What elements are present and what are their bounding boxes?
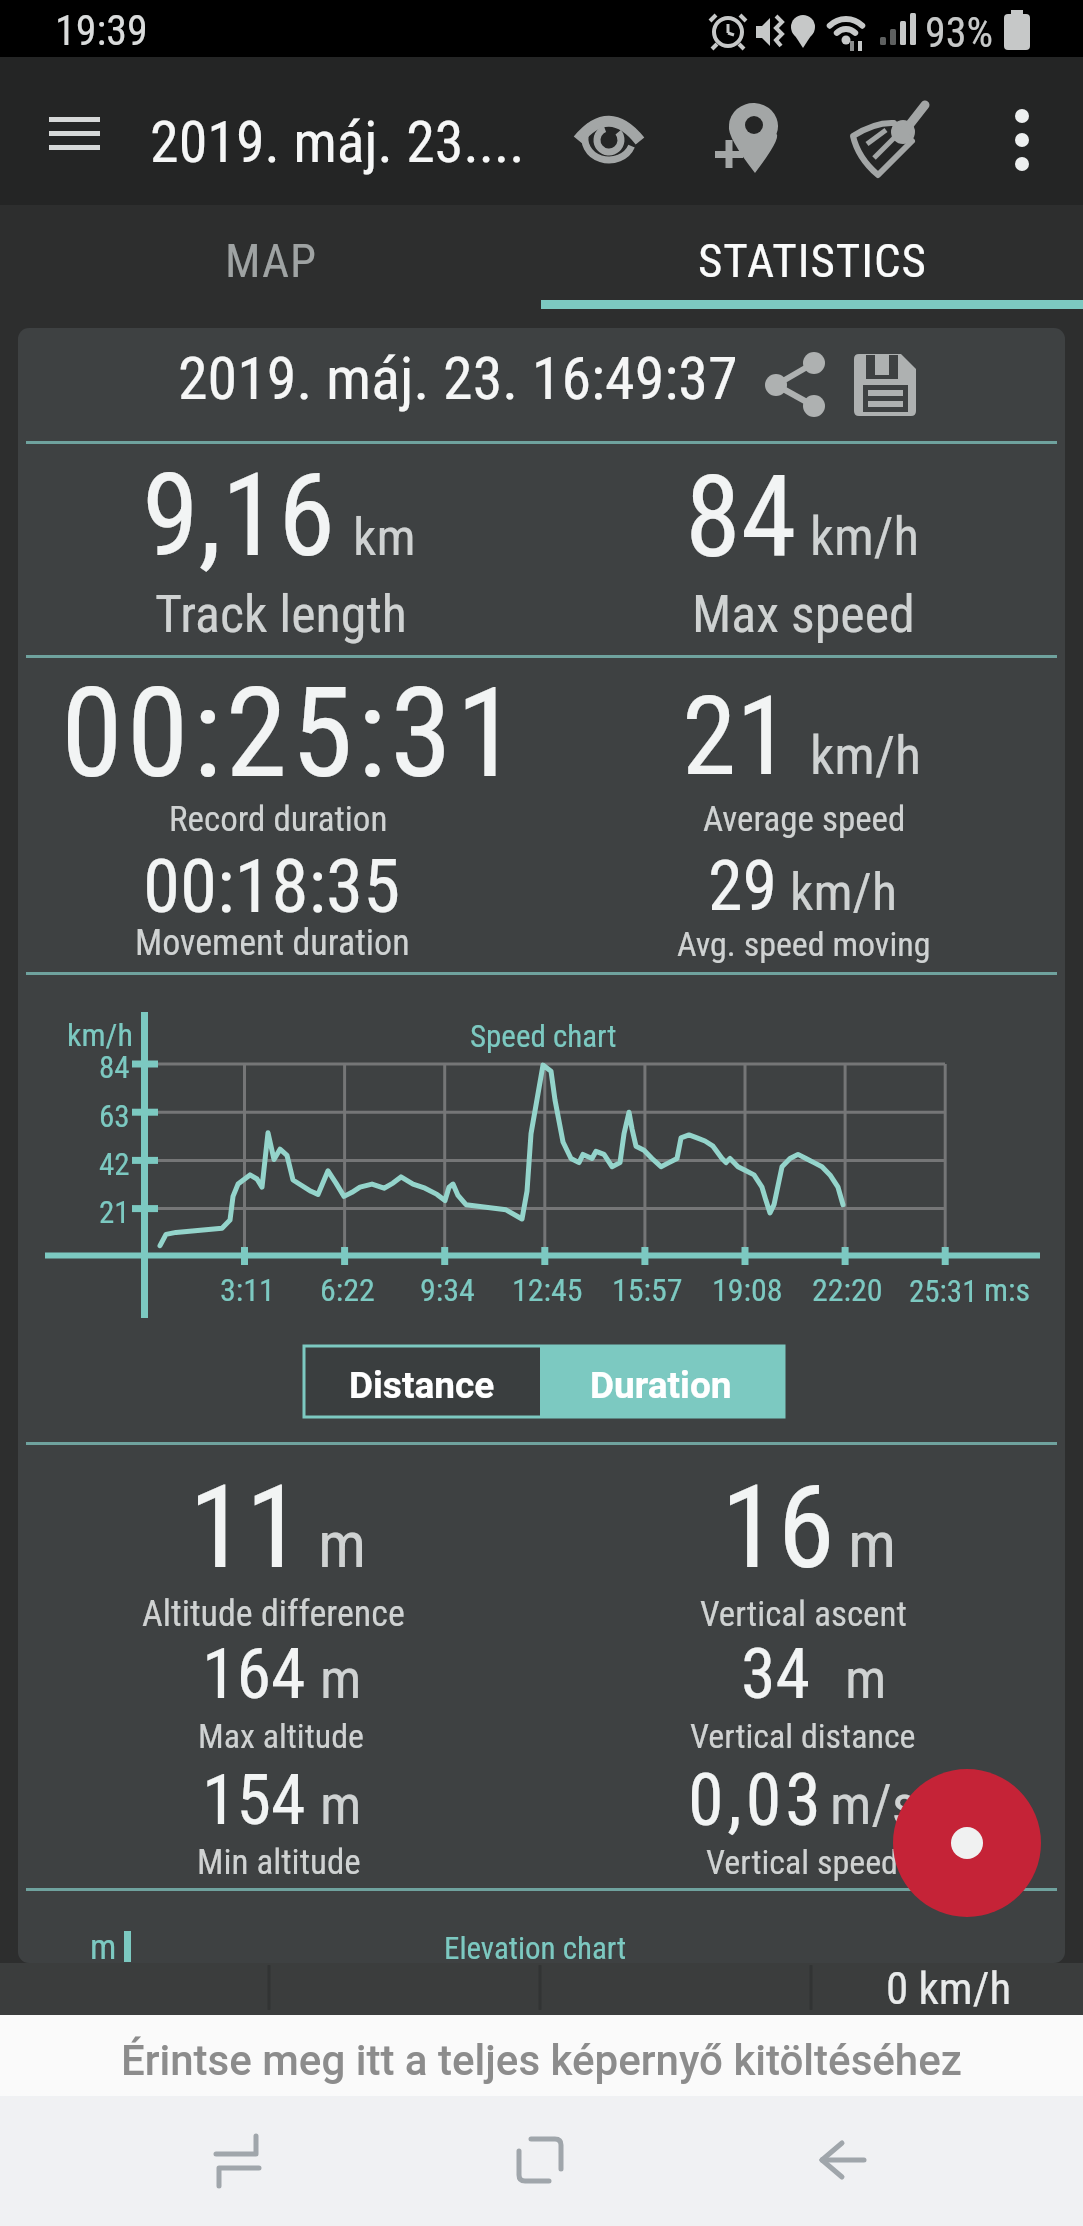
staticText: 34 xyxy=(741,1633,811,1715)
staticText: 9:34 xyxy=(420,1271,475,1309)
staticText: Vertical ascent xyxy=(700,1594,907,1635)
button[interactable] xyxy=(985,95,1065,185)
staticText: m xyxy=(90,1927,117,1968)
staticText: m xyxy=(320,1647,362,1711)
button[interactable] xyxy=(170,2106,310,2216)
staticText: Distance xyxy=(349,1364,495,1407)
staticText: m:s xyxy=(984,1271,1031,1309)
button[interactable] xyxy=(845,95,945,185)
staticText: 63 xyxy=(99,1098,130,1134)
button[interactable] xyxy=(840,340,935,435)
staticText: m xyxy=(318,1508,367,1583)
button[interactable] xyxy=(541,205,1083,310)
staticText: Elevation chart xyxy=(444,1930,627,1966)
button[interactable] xyxy=(565,100,655,180)
button[interactable] xyxy=(0,205,541,310)
staticText: 84 xyxy=(99,1049,130,1085)
staticText: m xyxy=(848,1508,897,1583)
staticText: 21 xyxy=(682,672,791,801)
staticText: Max speed xyxy=(692,584,915,645)
staticText: 00:25:31 xyxy=(61,660,522,806)
staticText: km/h xyxy=(790,862,897,923)
staticText: 2019. máj. 23. 16:49:37 xyxy=(178,343,738,413)
staticText: km/h xyxy=(810,724,922,787)
staticText: 0 km/h xyxy=(886,1962,1012,2015)
button[interactable] xyxy=(470,2106,610,2216)
staticText: 16 xyxy=(721,1460,835,1595)
staticText: m xyxy=(320,1773,362,1837)
staticText: 3:11 xyxy=(220,1271,275,1309)
staticText: 9,16 xyxy=(142,448,335,583)
staticText: Avg. speed moving xyxy=(677,924,931,964)
button[interactable] xyxy=(700,95,800,185)
staticText: Track length xyxy=(155,584,407,645)
staticText: 19:08 xyxy=(712,1271,783,1309)
staticText: 154 xyxy=(202,1759,306,1841)
staticText: MAP xyxy=(225,233,318,288)
staticText: 19:39 xyxy=(55,6,148,55)
staticText: Max altitude xyxy=(198,1716,364,1756)
staticText: 22:20 xyxy=(812,1271,883,1309)
staticText: 6:22 xyxy=(320,1271,375,1309)
staticText: m/s xyxy=(830,1773,917,1837)
staticText: 21 xyxy=(99,1194,130,1230)
staticText: 29 xyxy=(708,845,778,927)
staticText: Duration xyxy=(590,1364,732,1407)
staticText: 25:31 xyxy=(909,1273,978,1309)
staticText: 164 xyxy=(202,1633,306,1715)
staticText: 0,03 xyxy=(688,1758,825,1842)
staticText: 84 xyxy=(685,451,797,583)
button[interactable] xyxy=(0,2015,1083,2096)
staticText: km/h xyxy=(810,506,920,568)
staticText: 42 xyxy=(99,1146,130,1182)
staticText: km/h xyxy=(67,1016,133,1054)
button[interactable] xyxy=(770,2106,910,2216)
staticText: km xyxy=(353,507,416,568)
staticText: Average speed xyxy=(703,799,906,840)
button[interactable] xyxy=(30,105,120,165)
button[interactable] xyxy=(745,340,845,435)
button[interactable] xyxy=(304,1346,540,1417)
staticText: 2019. máj. 23.... xyxy=(150,108,525,176)
button[interactable] xyxy=(540,1346,784,1417)
staticText: Speed chart xyxy=(470,1018,617,1054)
staticText: 15:57 xyxy=(612,1271,683,1309)
staticText: 93% xyxy=(925,8,994,57)
staticText: STATISTICS xyxy=(698,233,927,288)
staticText: Min altitude xyxy=(197,1842,361,1883)
staticText: 11 xyxy=(189,1460,303,1595)
staticText: Altitude difference xyxy=(142,1593,405,1635)
staticText: m xyxy=(845,1647,887,1711)
staticText: Movement duration xyxy=(135,922,410,964)
button[interactable] xyxy=(893,1769,1041,1917)
staticText: Érintse meg itt a teljes képernyő kitölt… xyxy=(121,2036,962,2085)
staticText: Vertical speed xyxy=(706,1842,898,1882)
staticText: 12:45 xyxy=(512,1271,583,1309)
staticText: Record duration xyxy=(169,799,388,840)
staticText: 00:18:35 xyxy=(143,842,401,930)
staticText: Vertical distance xyxy=(690,1716,916,1756)
